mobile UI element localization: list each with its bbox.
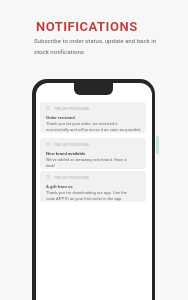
button[interactable]: PINK LADY PROFESSIONAL <box>40 171 146 202</box>
staticText: Thank you for downloading our app. Use t… <box>46 190 127 201</box>
staticText: Thank you for your order, we received it… <box>46 121 141 132</box>
staticText: NOTIFICATIONS <box>36 19 138 34</box>
staticText: Subscribe to order status, update and ba… <box>34 37 160 56</box>
button[interactable]: PINK LADY PROFESSIONAL <box>40 138 146 169</box>
staticText: PINK LADY PROFESSIONAL <box>54 143 91 146</box>
staticText: New brand available <box>46 151 86 156</box>
staticText: Order received <box>46 115 75 120</box>
staticText: A gift from us <box>46 184 73 189</box>
staticText: We've added an amazing new brand. Have a… <box>46 157 127 168</box>
button[interactable]: PINK LADY PROFESSIONAL <box>40 102 146 133</box>
staticText: PINK LADY PROFESSIONAL <box>54 176 91 179</box>
staticText: PINK LADY PROFESSIONAL <box>54 107 91 110</box>
